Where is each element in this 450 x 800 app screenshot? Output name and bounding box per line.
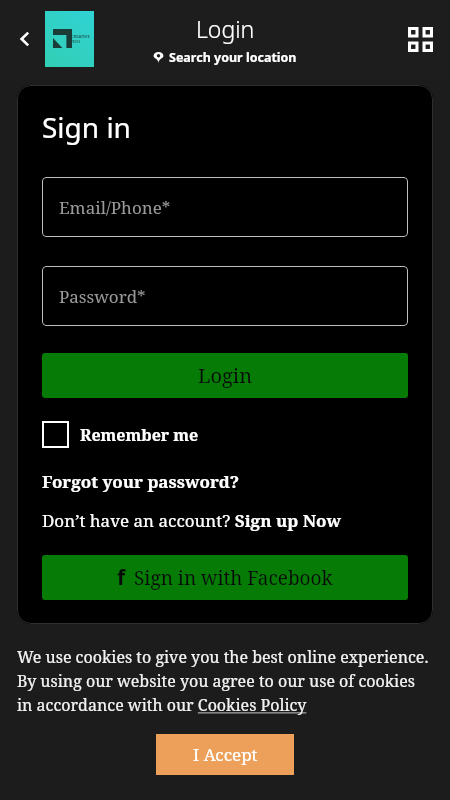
button[interactable]: Search your location	[153, 49, 297, 66]
button[interactable]: Remember me	[42, 421, 199, 448]
button[interactable]: Login	[42, 353, 408, 398]
staticText: Password*	[59, 285, 146, 308]
staticText: Sign in	[42, 108, 131, 146]
button[interactable]: Menu	[400, 19, 440, 59]
staticText: f	[117, 563, 126, 592]
staticText: Sign in with Facebook	[134, 565, 333, 591]
button[interactable]: Creative Tech logo	[45, 11, 94, 67]
button[interactable]: Forgot your password?	[42, 470, 240, 493]
staticText: CREATIVE	[71, 34, 90, 39]
button[interactable]: Email/Phone*	[42, 177, 408, 237]
staticText: Remember me	[80, 424, 199, 446]
button[interactable]: Don’t have an account? Sign up Now	[42, 509, 342, 532]
staticText: TECH	[71, 39, 80, 44]
staticText: Email/Phone*	[59, 196, 171, 219]
button[interactable]: f	[42, 555, 408, 600]
staticText: We use cookies to give you the best onli…	[17, 646, 433, 716]
button[interactable]: Back	[4, 18, 46, 60]
button[interactable]: I Accept	[156, 734, 294, 775]
staticText: Login	[198, 362, 253, 389]
staticText: Search your location	[169, 49, 297, 66]
button[interactable]: Password*	[42, 266, 408, 326]
staticText: Login	[196, 13, 255, 44]
staticText: I Accept	[193, 743, 258, 766]
